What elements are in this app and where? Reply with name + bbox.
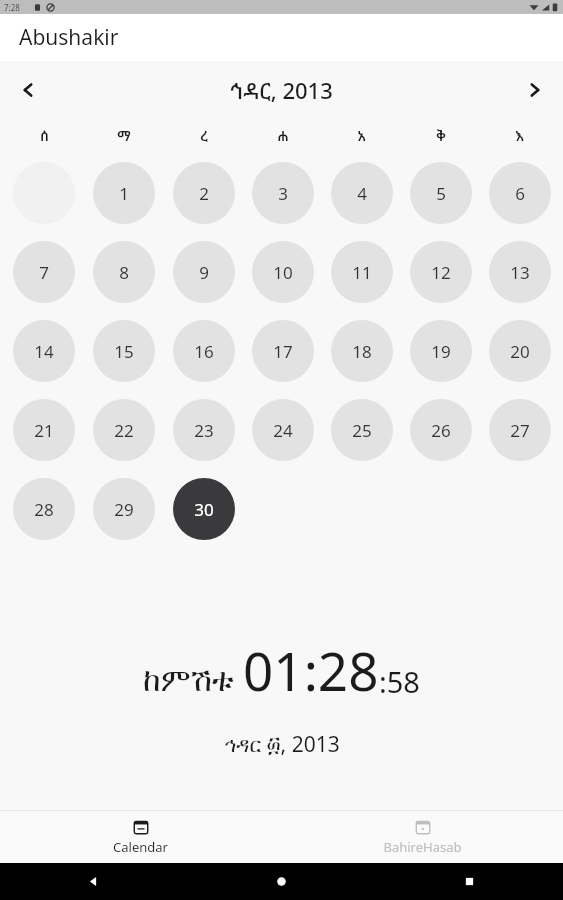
button[interactable]: Previous month [7, 69, 49, 111]
staticText: 6 [515, 182, 525, 205]
staticText: 29 [114, 498, 134, 521]
staticText: ከምሽቱ [143, 657, 243, 701]
button[interactable]: 20 [489, 320, 551, 382]
staticText: 15 [114, 340, 134, 363]
button[interactable]: Next month [514, 69, 556, 111]
button[interactable]: 29 [93, 478, 155, 540]
button[interactable]: Calendar [99, 816, 182, 859]
staticText: 14 [34, 340, 54, 363]
staticText: 4 [357, 182, 367, 205]
staticText: 18 [352, 340, 372, 363]
button[interactable]: 11 [331, 241, 393, 303]
staticText: 3 [278, 182, 288, 205]
button[interactable]: 27 [489, 399, 551, 461]
button[interactable]: 23 [173, 399, 235, 461]
staticText: 10 [273, 261, 293, 284]
staticText: ሰ [40, 126, 49, 145]
button[interactable]: 8 [93, 241, 155, 303]
staticText: ሐ [277, 126, 289, 145]
staticText: :58 [379, 662, 420, 701]
staticText: 12 [431, 261, 451, 284]
staticText: 23 [194, 419, 214, 442]
staticText: 24 [273, 419, 293, 442]
button[interactable]: 15 [93, 320, 155, 382]
staticText: Calendar [113, 838, 168, 856]
button[interactable]: 6 [489, 162, 551, 224]
button[interactable]: 14 [13, 320, 75, 382]
button[interactable]: 3 [252, 162, 314, 224]
button[interactable]: 19 [410, 320, 472, 382]
staticText: 11 [352, 261, 372, 284]
button[interactable]: 24 [252, 399, 314, 461]
button[interactable]: 18 [331, 320, 393, 382]
staticText: 2 [199, 182, 209, 205]
button[interactable]: 5 [410, 162, 472, 224]
staticText: Abushakir [19, 23, 119, 52]
staticText: 7:28 [4, 2, 20, 13]
button[interactable]: 16 [173, 320, 235, 382]
staticText: 30 [194, 498, 214, 521]
staticText: 22 [114, 419, 134, 442]
staticText: 8 [119, 261, 129, 284]
button[interactable]: 26 [410, 399, 472, 461]
button[interactable]: 17 [252, 320, 314, 382]
staticText: 17 [273, 340, 293, 363]
staticText: 21 [34, 419, 54, 442]
button[interactable]: 4 [331, 162, 393, 224]
staticText: 5 [436, 182, 446, 205]
button[interactable]: 21 [13, 399, 75, 461]
button[interactable]: BahireHasab [369, 816, 476, 859]
button[interactable]: 28 [13, 478, 75, 540]
staticText: 7 [39, 261, 49, 284]
staticText: 13 [510, 261, 530, 284]
other: Back [87, 875, 100, 888]
staticText: ረ [200, 126, 208, 145]
button[interactable]: 12 [410, 241, 472, 303]
staticText: ኅዳር ፴, 2013 [224, 730, 340, 759]
button[interactable]: 25 [331, 399, 393, 461]
button[interactable]: 22 [93, 399, 155, 461]
staticText: BahireHasab [383, 838, 462, 856]
staticText: አ [357, 126, 366, 145]
other: Recents [463, 875, 476, 888]
button[interactable]: 7 [13, 241, 75, 303]
button[interactable]: 9 [173, 241, 235, 303]
button[interactable]: 13 [489, 241, 551, 303]
staticText: 1 [119, 182, 129, 205]
staticText: ማ [117, 126, 131, 145]
other: Home [275, 875, 288, 888]
staticText: ቅ [436, 126, 446, 145]
staticText: 27 [510, 419, 530, 442]
staticText: 26 [431, 419, 451, 442]
staticText: 19 [431, 340, 451, 363]
staticText: 9 [199, 261, 209, 284]
button[interactable]: 1 [93, 162, 155, 224]
button[interactable]: 2 [173, 162, 235, 224]
staticText: ኅዳር, 2013 [230, 75, 333, 105]
staticText: 01:28 [243, 634, 379, 706]
staticText: 20 [510, 340, 530, 363]
button[interactable]: 30 [173, 478, 235, 540]
staticText: 16 [194, 340, 214, 363]
button[interactable]: 10 [252, 241, 314, 303]
staticText: እ [515, 126, 524, 145]
staticText: 28 [34, 498, 54, 521]
staticText: 25 [352, 419, 372, 442]
